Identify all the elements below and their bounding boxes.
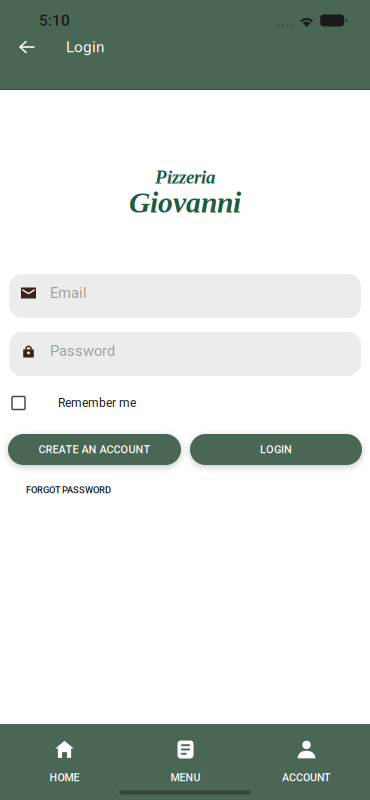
staticText: Giovanni: [129, 186, 241, 219]
button[interactable]: Email: [9, 274, 361, 318]
button[interactable]: Password: [9, 332, 361, 376]
button[interactable]: MENU: [125, 740, 246, 782]
staticText: CREATE AN ACCOUNT: [38, 443, 150, 456]
staticText: Remember me: [58, 396, 136, 410]
button[interactable]: CREATE AN ACCOUNT: [8, 434, 181, 465]
button[interactable]: Back: [5, 25, 49, 69]
button[interactable]: LOGIN: [190, 434, 362, 465]
staticText: 5:10: [39, 11, 70, 29]
button[interactable]: FORGOT PASSWORD: [9, 482, 361, 498]
staticText: Email: [50, 284, 87, 302]
staticText: Password: [50, 342, 115, 360]
staticText: ACCOUNT: [282, 771, 331, 784]
button[interactable]: ACCOUNT: [246, 740, 367, 782]
button[interactable]: Remember me: [9, 392, 361, 414]
staticText: Login: [66, 38, 104, 56]
staticText: Pizzeria: [155, 166, 215, 187]
staticText: LOGIN: [260, 443, 292, 456]
button[interactable]: HOME: [4, 740, 125, 782]
staticText: HOME: [49, 771, 79, 784]
staticText: FORGOT PASSWORD: [26, 484, 111, 495]
staticText: MENU: [170, 771, 200, 784]
